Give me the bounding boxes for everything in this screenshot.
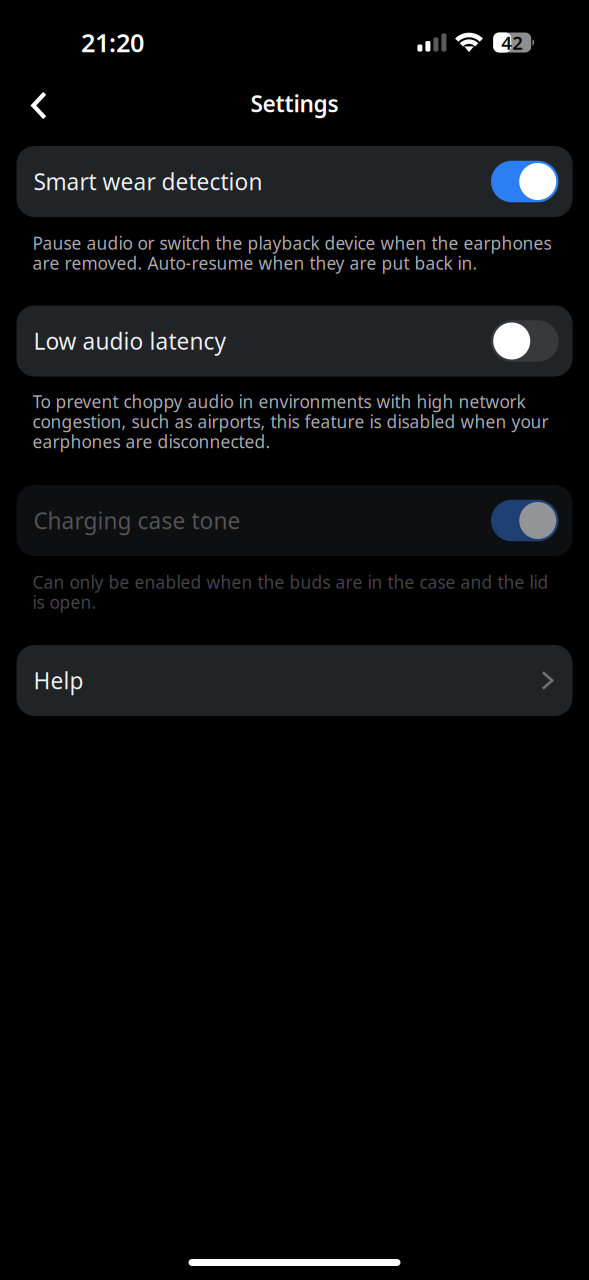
staticText: To prevent choppy audio in environments … — [32, 390, 525, 413]
staticText: are removed. Auto-resume when they are p… — [32, 251, 477, 274]
staticText: Pause audio or switch the playback devic… — [32, 231, 551, 254]
staticText: is open. — [32, 590, 96, 613]
button[interactable]: Charging case tone — [16, 485, 572, 556]
staticText: 21:20 — [81, 26, 144, 59]
button[interactable]: Low audio latency — [16, 305, 572, 376]
button[interactable]: Help — [16, 645, 572, 716]
staticText: Smart wear detection — [33, 166, 262, 196]
staticText: Help — [33, 665, 83, 695]
staticText: Charging case tone — [33, 505, 240, 535]
staticText: Settings — [250, 88, 338, 118]
staticText: Can only be enabled when the buds are in… — [32, 570, 548, 593]
staticText: congestion, such as airports, this featu… — [32, 410, 548, 433]
staticText: Low audio latency — [33, 326, 226, 356]
button[interactable]: Back — [12, 79, 66, 127]
button[interactable]: Smart wear detection — [16, 146, 572, 217]
staticText: earphones are disconnected. — [32, 430, 270, 453]
staticText: 42 — [501, 30, 523, 55]
